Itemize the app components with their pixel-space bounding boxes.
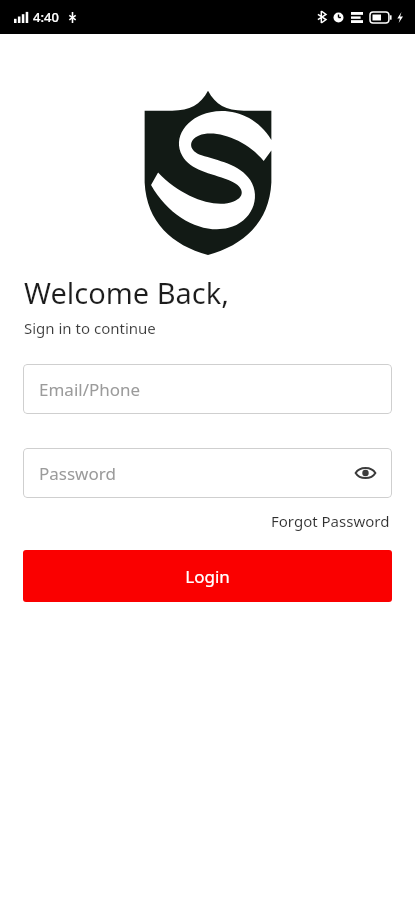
staticText: Login — [185, 565, 230, 588]
staticText: Forgot Password — [271, 511, 390, 531]
button[interactable]: Login — [23, 550, 392, 602]
button[interactable]: Password — [23, 448, 392, 498]
staticText: Password — [39, 462, 116, 485]
staticText: Email/Phone — [39, 378, 141, 401]
button[interactable]: Email/Phone — [23, 364, 392, 414]
staticText: Sign in to continue — [24, 318, 156, 338]
staticText: 4:40 — [33, 8, 59, 26]
button[interactable]: Show password — [348, 456, 382, 490]
button[interactable]: Forgot Password — [269, 508, 392, 534]
staticText: Welcome Back, — [24, 273, 230, 312]
